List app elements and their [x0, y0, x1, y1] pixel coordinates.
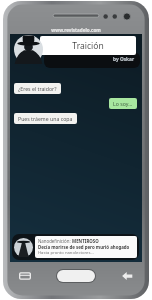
staticText: www.revistadelo.com [51, 27, 101, 33]
staticText: Lo soy... [113, 100, 133, 107]
button[interactable]: Pues tráeme una copa [14, 113, 77, 124]
button[interactable]: ¿Eres el traidor? [14, 83, 61, 94]
staticText: Pues tráeme una copa [18, 115, 73, 122]
staticText: Hasta pronto nanolectores... [38, 250, 94, 256]
button[interactable]: Lo soy... [109, 98, 137, 109]
staticText: MENTIROSO [72, 238, 99, 244]
button[interactable]: Profile photo [14, 35, 43, 64]
staticText: Decía morirse de sed pero murió ahogado [38, 244, 130, 250]
staticText: Nanodefinición: [38, 238, 72, 244]
button[interactable]: Home [57, 270, 95, 282]
button[interactable]: Menu [18, 269, 32, 283]
button[interactable]: Nanodefinición: [12, 234, 139, 260]
staticText: Traición [72, 40, 104, 52]
staticText: ¿Eres el traidor? [18, 85, 57, 92]
button[interactable]: Back [120, 269, 134, 283]
button[interactable]: Traición [40, 36, 136, 55]
staticText: by Oskar [113, 56, 135, 63]
